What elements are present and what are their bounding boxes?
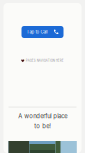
button[interactable]: Tap to Call	[21, 26, 63, 38]
staticText: PAGES NAVIGATION HERE	[26, 59, 64, 62]
staticText: A wonderful place to be!	[18, 112, 67, 130]
staticText: Tap to Call	[26, 29, 47, 35]
button[interactable]: PAGES NAVIGATION HERE	[20, 59, 65, 62]
